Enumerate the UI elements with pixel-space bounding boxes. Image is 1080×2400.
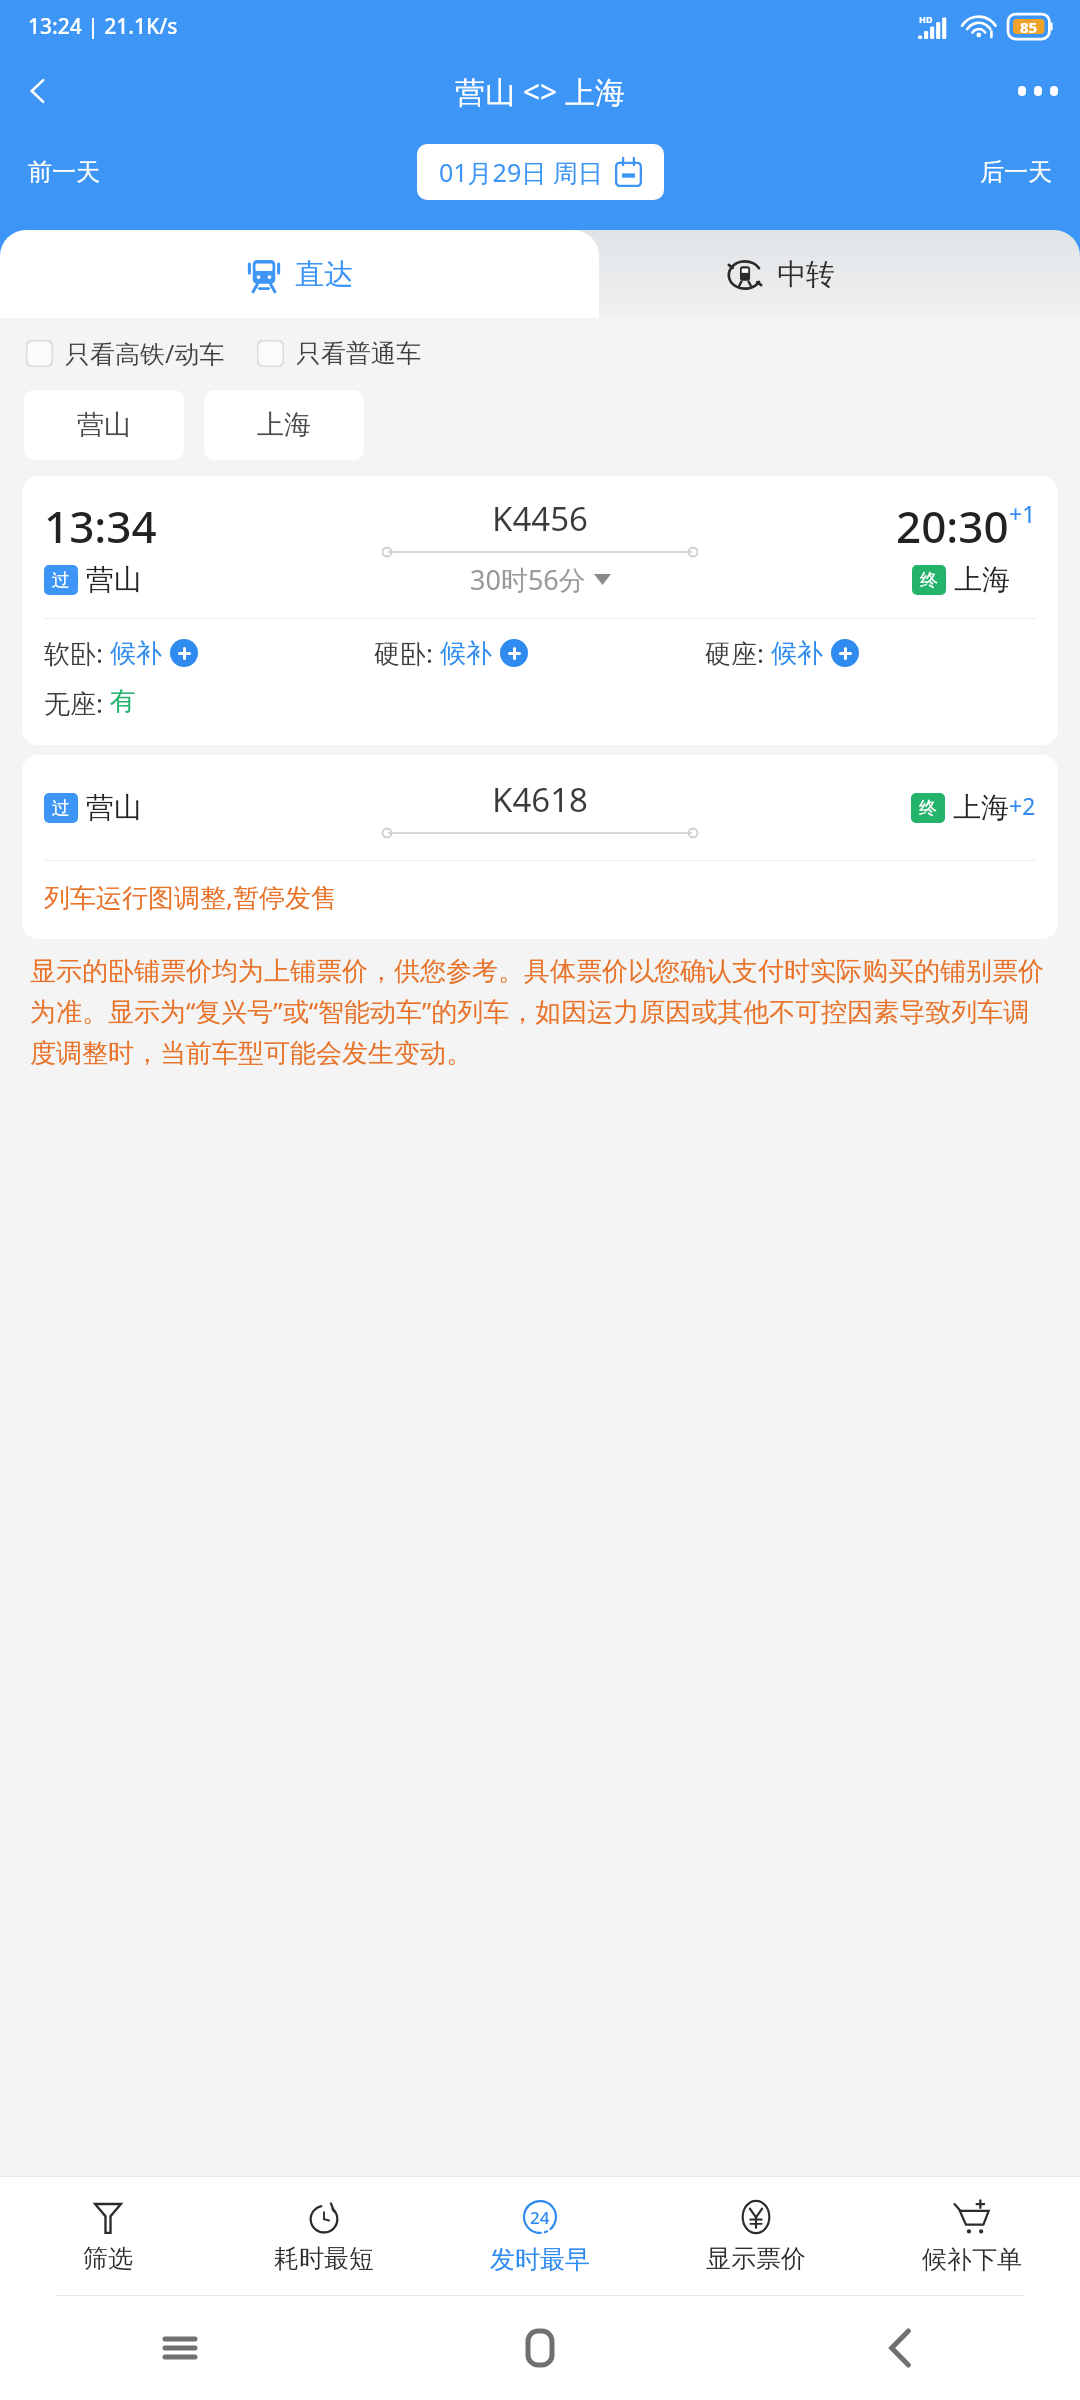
button[interactable]: 显示票价 bbox=[648, 2177, 864, 2295]
button[interactable]: Back bbox=[0, 53, 76, 129]
staticText: 有 bbox=[110, 685, 136, 718]
staticText: K4618 bbox=[492, 777, 588, 822]
staticText: K4456 bbox=[492, 496, 588, 541]
button[interactable]: 营山 bbox=[24, 390, 184, 460]
staticText: 85 bbox=[1020, 17, 1038, 37]
staticText: 候补 bbox=[110, 637, 162, 670]
staticText: 终 bbox=[919, 797, 937, 820]
staticText: 营山 bbox=[86, 790, 142, 825]
staticText: 前一天 bbox=[28, 157, 100, 187]
button[interactable]: 耗时最短 bbox=[216, 2177, 432, 2295]
button[interactable]: 上海 bbox=[204, 390, 364, 460]
staticText: 过 bbox=[52, 569, 70, 592]
staticText: 01月29日 周日 bbox=[439, 155, 603, 189]
button[interactable]: 硬卧: bbox=[374, 635, 705, 671]
staticText: 24 bbox=[530, 2206, 550, 2229]
staticText: 硬卧: bbox=[374, 635, 440, 671]
button[interactable]: 中转 bbox=[481, 230, 1080, 318]
staticText: 筛选 bbox=[83, 2243, 133, 2274]
staticText: 上海 bbox=[953, 790, 1009, 825]
staticText: 显示的卧铺票价均为上铺票价，供您参考。具体票价以您确认支付时实际购买的铺别票价为… bbox=[30, 955, 1050, 1070]
button[interactable]: 硬座: bbox=[705, 635, 1036, 671]
staticText: 后一天 bbox=[980, 157, 1052, 187]
button[interactable]: 只看高铁/动车 bbox=[22, 328, 229, 378]
button[interactable]: 筛选 bbox=[0, 2177, 216, 2295]
button[interactable]: 只看普通车 bbox=[253, 330, 425, 377]
staticText: 终 bbox=[920, 569, 938, 592]
staticText: 过 bbox=[52, 797, 70, 820]
staticText: HD bbox=[919, 13, 933, 25]
button[interactable]: Home bbox=[510, 2313, 570, 2383]
button[interactable]: 直达 bbox=[0, 230, 599, 318]
button[interactable]: More options bbox=[996, 52, 1080, 130]
button[interactable]: 软卧: bbox=[44, 635, 374, 671]
button[interactable]: 候补下单 bbox=[864, 2177, 1080, 2295]
staticText: 13:24 | 21.1K/s bbox=[28, 12, 178, 41]
staticText: +2 bbox=[1009, 790, 1036, 821]
button[interactable]: Recent apps bbox=[147, 2318, 213, 2378]
staticText: 耗时最短 bbox=[274, 2243, 374, 2274]
staticText: 候补 bbox=[440, 637, 492, 670]
staticText: 只看普通车 bbox=[296, 338, 421, 369]
staticText: 直达 bbox=[295, 256, 353, 293]
button[interactable]: 01月29日 周日 bbox=[417, 144, 664, 200]
button[interactable]: 过 bbox=[22, 755, 1058, 939]
staticText: 候补 bbox=[771, 637, 823, 670]
staticText: 只看高铁/动车 bbox=[65, 336, 225, 370]
staticText: 30时56分 bbox=[470, 561, 586, 598]
staticText: 营山 bbox=[86, 562, 142, 597]
staticText: 中转 bbox=[777, 256, 835, 293]
staticText: 上海 bbox=[954, 562, 1010, 597]
staticText: 列车运行图调整,暂停发售 bbox=[44, 879, 337, 915]
staticText: +1 bbox=[1009, 498, 1036, 529]
staticText: 软卧: bbox=[44, 635, 110, 671]
staticText: 无座: bbox=[44, 685, 110, 721]
button[interactable]: 24 bbox=[432, 2177, 648, 2295]
staticText: 候补下单 bbox=[922, 2244, 1022, 2275]
button[interactable]: Back bbox=[871, 2313, 929, 2383]
staticText: 上海 bbox=[257, 408, 311, 442]
staticText: 显示票价 bbox=[706, 2243, 806, 2274]
staticText: 营山 <> 上海 bbox=[455, 71, 625, 112]
button[interactable]: 前一天 bbox=[10, 145, 118, 199]
staticText: 20:30 bbox=[896, 496, 1009, 556]
staticText: 发时最早 bbox=[490, 2244, 590, 2275]
button[interactable]: 后一天 bbox=[962, 145, 1070, 199]
button[interactable]: 13:34 bbox=[22, 476, 1058, 745]
staticText: 13:34 bbox=[44, 496, 157, 556]
staticText: 营山 bbox=[77, 408, 131, 442]
staticText: 硬座: bbox=[705, 635, 771, 671]
